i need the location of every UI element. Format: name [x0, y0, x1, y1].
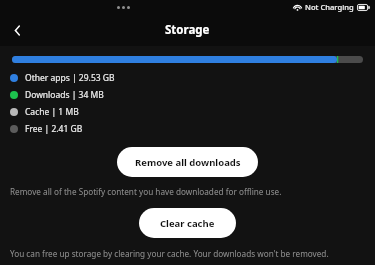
staticText: Clear cache: [160, 217, 215, 230]
other: Wi-Fi: [293, 3, 302, 11]
button[interactable]: Back: [3, 16, 31, 44]
staticText: Free | 2.41 GB: [25, 123, 83, 135]
staticText: Remove all downloads: [135, 156, 241, 169]
staticText: Remove all of the Spotify content you ha…: [10, 186, 282, 197]
staticText: Storage: [165, 22, 210, 38]
staticText: You can free up storage by clearing your…: [10, 248, 329, 259]
button[interactable]: Clear cache: [139, 208, 236, 238]
staticText: Downloads | 34 MB: [25, 89, 104, 101]
button[interactable]: Remove all downloads: [117, 147, 258, 177]
staticText: Cache | 1 MB: [25, 106, 79, 118]
other: Battery: [357, 4, 370, 11]
staticText: Not Charging: [305, 2, 354, 12]
staticText: Other apps | 29.53 GB: [25, 72, 115, 84]
